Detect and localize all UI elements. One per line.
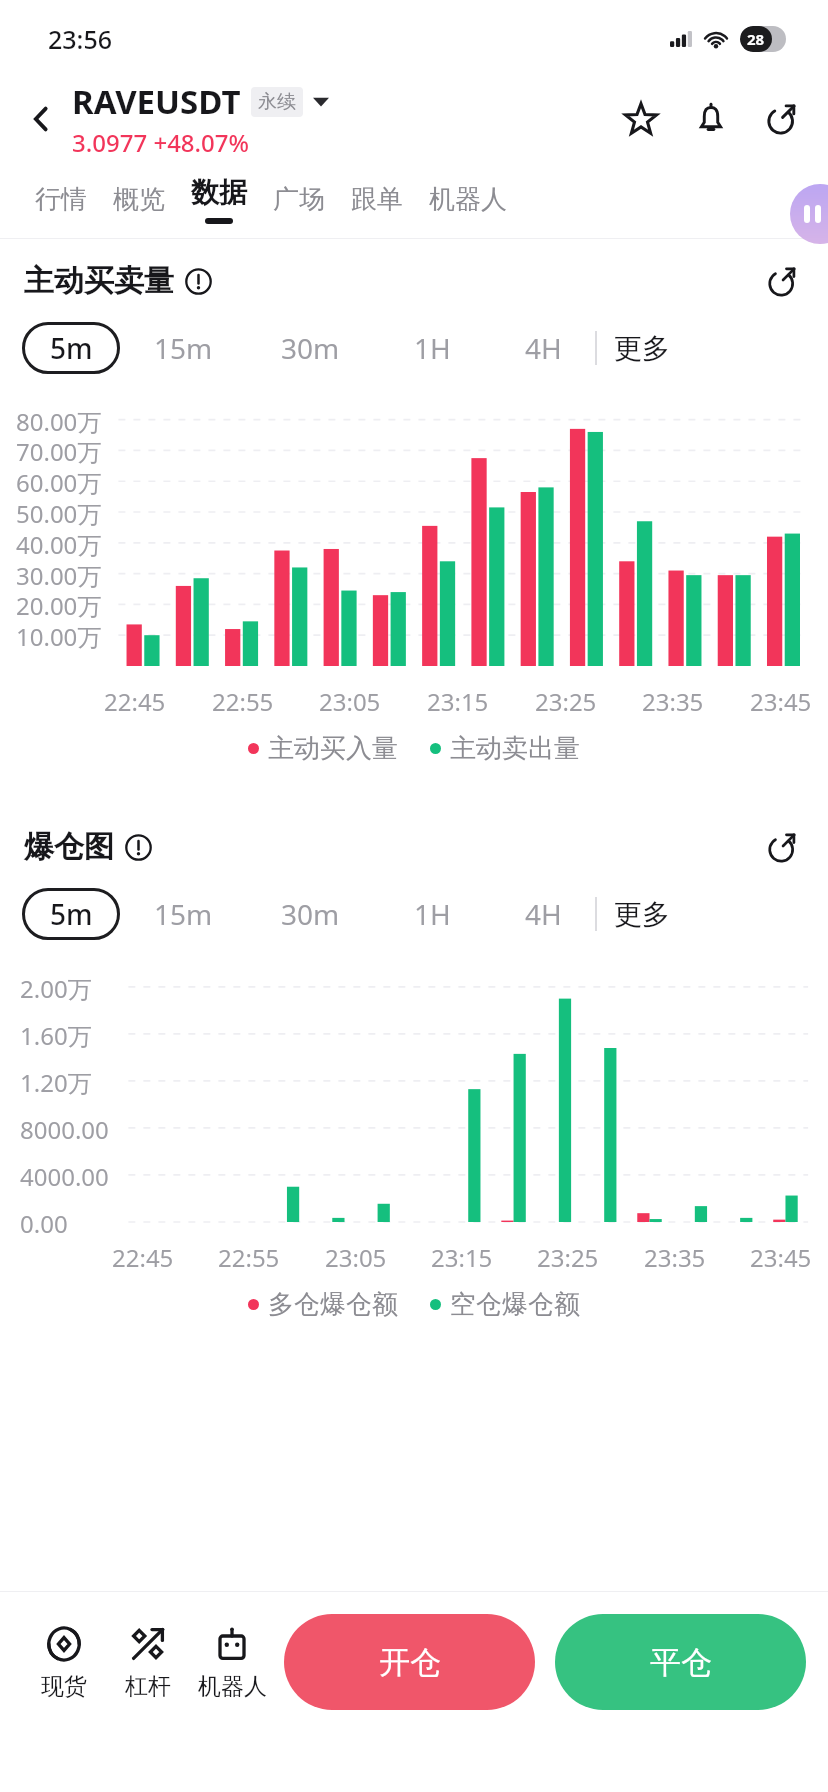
staticText: 23:35 <box>642 685 704 718</box>
staticText: 概览 <box>113 183 165 216</box>
staticText: 永续 <box>258 90 296 114</box>
button[interactable]: 行情 <box>22 160 100 238</box>
staticText: 主动卖出量 <box>450 732 580 765</box>
button[interactable]: Open full chart <box>758 824 804 870</box>
staticText: 更多 <box>614 897 670 932</box>
staticText: 23:25 <box>535 685 597 718</box>
staticText: 30.00万 <box>16 559 102 592</box>
staticText: 主动买入量 <box>268 732 398 765</box>
staticText: 更多 <box>614 331 670 366</box>
staticText: 2.00万 <box>20 972 92 1005</box>
staticText: 23:45 <box>750 1241 812 1274</box>
button[interactable]: 概览 <box>100 160 178 238</box>
staticText: RAVEUSDT <box>72 79 241 124</box>
staticText: 1H <box>414 895 451 933</box>
staticText: 23:05 <box>325 1241 387 1274</box>
button[interactable]: 机器人 <box>190 1620 274 1705</box>
staticText: 行情 <box>35 183 87 216</box>
button[interactable]: 15m <box>120 888 246 940</box>
button[interactable]: 4H <box>491 888 595 940</box>
staticText: 22:55 <box>218 1241 280 1274</box>
staticText: 23:35 <box>644 1241 706 1274</box>
staticText: 现货 <box>41 1672 87 1701</box>
staticText: 22:45 <box>112 1241 174 1274</box>
button[interactable]: 5m <box>22 888 120 940</box>
staticText: 机器人 <box>429 183 507 216</box>
staticText: 20.00万 <box>16 589 102 622</box>
button[interactable]: 数据 <box>178 160 260 238</box>
staticText: 23:45 <box>750 685 812 718</box>
button[interactable]: Assistant <box>790 184 828 244</box>
button[interactable]: Alerts <box>688 96 734 142</box>
staticText: 50.00万 <box>16 497 102 530</box>
button[interactable]: 开仓 <box>284 1614 535 1710</box>
button[interactable]: Back <box>18 96 64 142</box>
button[interactable]: 杠杆 <box>106 1620 190 1705</box>
staticText: 4H <box>525 895 562 933</box>
staticText: 5m <box>50 895 93 933</box>
button[interactable]: Info <box>182 265 214 297</box>
staticText: 15m <box>154 895 213 933</box>
button[interactable]: 更多 <box>597 322 687 374</box>
staticText: 5m <box>50 329 93 367</box>
staticText: 30m <box>281 895 340 933</box>
button[interactable]: 30m <box>246 322 374 374</box>
button[interactable]: 5m <box>22 322 120 374</box>
button[interactable]: Favorite <box>618 96 664 142</box>
staticText: 40.00万 <box>16 528 102 561</box>
button[interactable]: 1H <box>374 322 491 374</box>
staticText: 跟单 <box>351 183 403 216</box>
staticText: 空仓爆仓额 <box>450 1288 580 1321</box>
button[interactable]: 跟单 <box>338 160 416 238</box>
staticText: 23:56 <box>48 22 113 56</box>
staticText: 10.00万 <box>16 620 102 653</box>
button[interactable]: 平仓 <box>555 1614 806 1710</box>
staticText: 70.00万 <box>16 435 102 468</box>
staticText: 主动买卖量 <box>24 262 174 300</box>
button[interactable]: 广场 <box>260 160 338 238</box>
staticText: 22:55 <box>212 685 274 718</box>
button[interactable]: 30m <box>246 888 374 940</box>
staticText: 数据 <box>191 175 247 210</box>
staticText: 22:45 <box>104 685 166 718</box>
staticText: 23:25 <box>537 1241 599 1274</box>
staticText: 机器人 <box>198 1672 267 1701</box>
staticText: 4000.00 <box>20 1160 109 1193</box>
staticText: 1.60万 <box>20 1019 92 1052</box>
staticText: 23:15 <box>427 685 489 718</box>
staticText: 广场 <box>273 183 325 216</box>
staticText: 多仓爆仓额 <box>268 1288 398 1321</box>
staticText: 15m <box>154 329 213 367</box>
button[interactable]: 机器人 <box>416 160 520 238</box>
staticText: 28 <box>747 29 765 49</box>
staticText: 80.00万 <box>16 405 102 438</box>
staticText: 杠杆 <box>125 1672 171 1701</box>
button[interactable]: 现货 <box>22 1620 106 1705</box>
staticText: 1H <box>414 329 451 367</box>
button[interactable]: 1H <box>374 888 491 940</box>
staticText: 60.00万 <box>16 466 102 499</box>
staticText: 1.20万 <box>20 1066 92 1099</box>
staticText: 8000.00 <box>20 1113 109 1146</box>
button[interactable]: 15m <box>120 322 246 374</box>
staticText: 3.0977 +48.07% <box>72 126 250 159</box>
staticText: 平仓 <box>650 1643 712 1682</box>
staticText: 爆仓图 <box>24 828 114 866</box>
button[interactable]: Open full chart <box>758 258 804 304</box>
staticText: 0.00 <box>20 1207 68 1240</box>
button[interactable]: Share <box>758 96 804 142</box>
staticText: 开仓 <box>379 1643 441 1682</box>
button[interactable]: Info <box>122 831 154 863</box>
button[interactable]: 更多 <box>597 888 687 940</box>
staticText: 30m <box>281 329 340 367</box>
staticText: 4H <box>525 329 562 367</box>
staticText: 23:05 <box>319 685 381 718</box>
button[interactable]: 4H <box>491 322 595 374</box>
staticText: 23:15 <box>431 1241 493 1274</box>
